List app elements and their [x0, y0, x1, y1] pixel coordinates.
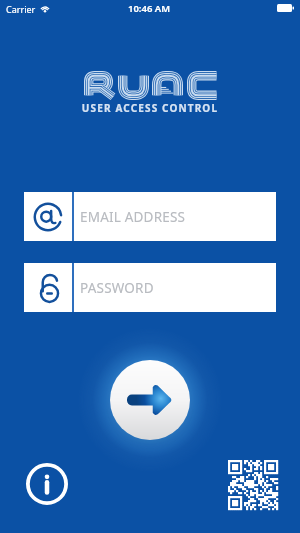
- staticText: PASSWORD: [80, 279, 154, 297]
- button[interactable]: Information: [25, 462, 69, 506]
- staticText: EMAIL ADDRESS: [80, 208, 186, 226]
- button[interactable]: Sign in: [110, 360, 190, 440]
- button[interactable]: EMAIL ADDRESS: [24, 192, 276, 241]
- button[interactable]: QR code: [228, 460, 278, 510]
- staticText: USER ACCESS CONTROL: [70, 101, 230, 115]
- staticText: 10:46 AM: [128, 2, 171, 15]
- button[interactable]: PASSWORD: [24, 263, 276, 312]
- staticText: Carrier: [6, 3, 36, 15]
